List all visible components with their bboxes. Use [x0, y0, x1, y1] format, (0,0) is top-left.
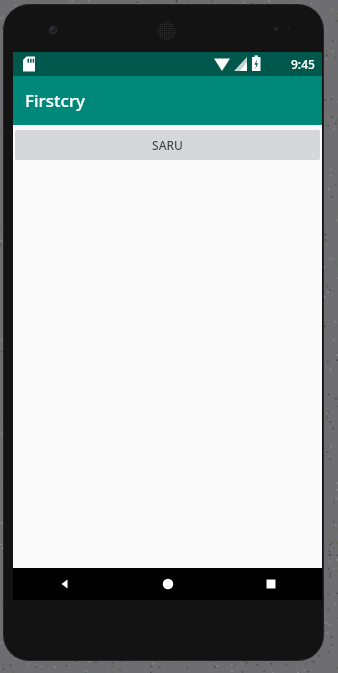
button[interactable]: SARU [15, 130, 320, 160]
staticText: Firstcry [25, 89, 86, 112]
button[interactable]: Recent apps [219, 568, 322, 600]
staticText: SARU [152, 137, 183, 153]
staticText: 9:45 [291, 56, 315, 72]
button[interactable]: Home [116, 568, 219, 600]
button[interactable]: Back [13, 568, 116, 600]
